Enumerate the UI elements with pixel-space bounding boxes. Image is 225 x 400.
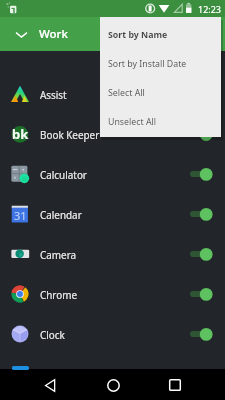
button[interactable]: Assist <box>0 74 225 114</box>
button[interactable]: Toggle Book Keeper <box>188 123 222 145</box>
button[interactable]: Toggle Calendar <box>188 203 222 225</box>
button[interactable]: Unselect All <box>100 107 221 136</box>
button[interactable]: Toggle Calculator <box>188 163 222 185</box>
staticText: Camera <box>40 248 77 261</box>
staticText: 31 <box>14 208 27 223</box>
button[interactable]: Camera <box>0 234 225 274</box>
button[interactable]: Toggle Camera <box>188 243 222 265</box>
staticText: Sort by Install Date <box>108 58 187 70</box>
staticText: Work <box>39 26 68 42</box>
button[interactable]: 31 <box>0 194 225 234</box>
staticText: Unselect All <box>108 116 157 128</box>
staticText: Sort by Name <box>108 29 168 41</box>
button[interactable]: Chrome <box>0 274 225 314</box>
button[interactable]: Collapse <box>11 24 31 44</box>
staticText: Calculator <box>40 168 87 181</box>
staticText: Chrome <box>40 288 78 301</box>
staticText: Book Keeper <box>40 128 100 141</box>
button[interactable]: Home <box>102 374 124 396</box>
button[interactable]: Calculator <box>0 154 225 194</box>
button[interactable]: Clock <box>0 314 225 354</box>
staticText: Select All <box>108 87 145 99</box>
staticText: 12:23 <box>198 3 222 15</box>
button[interactable]: bk <box>0 114 225 154</box>
button[interactable]: Sort by Install Date <box>100 49 221 78</box>
staticText: Assist <box>40 88 67 101</box>
staticText: Clock <box>40 328 65 341</box>
button[interactable]: Select All <box>100 78 221 107</box>
button[interactable]: Back <box>39 374 61 396</box>
button[interactable]: Recents <box>164 374 186 396</box>
staticText: Calendar <box>40 208 82 221</box>
button[interactable]: Toggle Assist <box>188 83 222 105</box>
button[interactable]: Toggle Clock <box>188 323 222 345</box>
button[interactable]: Sort by Name <box>100 20 221 49</box>
staticText: bk <box>12 125 29 143</box>
button[interactable]: Toggle Chrome <box>188 283 222 305</box>
